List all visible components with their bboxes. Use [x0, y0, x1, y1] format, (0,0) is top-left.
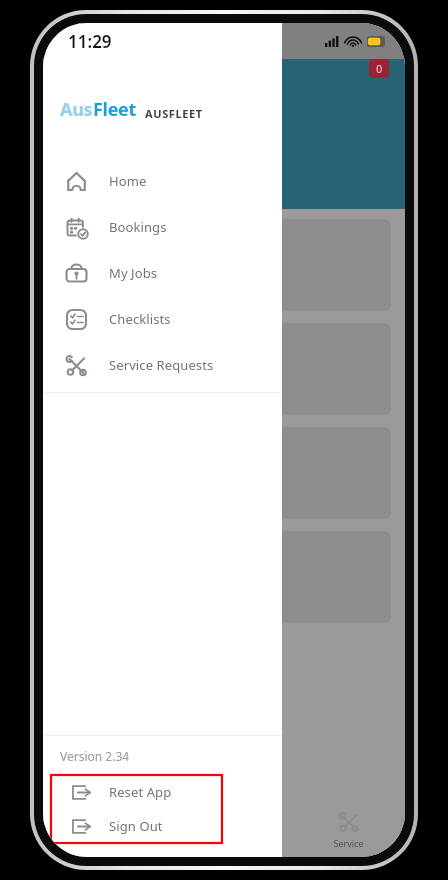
- staticText: AUSFLEET: [145, 106, 203, 121]
- staticText: Home: [109, 172, 147, 190]
- staticText: Aus: [60, 97, 93, 122]
- button[interactable]: 21: [53, 219, 391, 311]
- button[interactable]: Notifications: [369, 59, 389, 78]
- staticText: Checklists: [109, 310, 171, 328]
- button[interactable]: Sign Out: [51, 809, 222, 843]
- button[interactable]: Bookings: [43, 204, 282, 250]
- staticText: 21: [66, 256, 81, 274]
- staticText: Sign Out: [109, 817, 163, 835]
- button[interactable]: Service: [292, 801, 405, 857]
- staticText: My Jobs: [109, 264, 158, 282]
- staticText: Version 2.34: [60, 748, 130, 764]
- staticText: 11:29: [68, 30, 112, 53]
- button[interactable]: 10: [53, 427, 391, 519]
- button[interactable]: [53, 323, 391, 415]
- button[interactable]: Checklists: [43, 296, 282, 342]
- button[interactable]: Home: [43, 158, 282, 204]
- button[interactable]: Checklists: [179, 801, 292, 857]
- staticText: Checklists: [215, 837, 257, 849]
- staticText: 0: [376, 61, 383, 76]
- staticText: Bookings: [109, 218, 167, 236]
- staticText: Reset App: [109, 783, 172, 801]
- button[interactable]: Service Requests: [43, 342, 282, 388]
- staticText: Fleet: [93, 97, 137, 122]
- staticText: Service: [333, 837, 364, 849]
- button[interactable]: My Jobs: [43, 250, 282, 296]
- button[interactable]: Reset App: [51, 775, 222, 809]
- staticText: Service Requests: [109, 356, 214, 374]
- button[interactable]: [53, 531, 391, 623]
